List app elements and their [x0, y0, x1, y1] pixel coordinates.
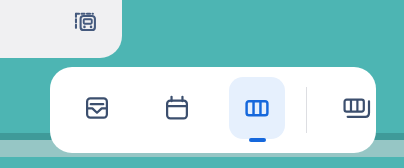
button[interactable]: Transit — [0, 0, 122, 58]
button[interactable]: Swipe board — [325, 67, 376, 153]
button[interactable]: Calendar — [146, 67, 208, 153]
button[interactable]: Inbox — [66, 67, 128, 153]
button[interactable]: Board — [226, 67, 288, 153]
